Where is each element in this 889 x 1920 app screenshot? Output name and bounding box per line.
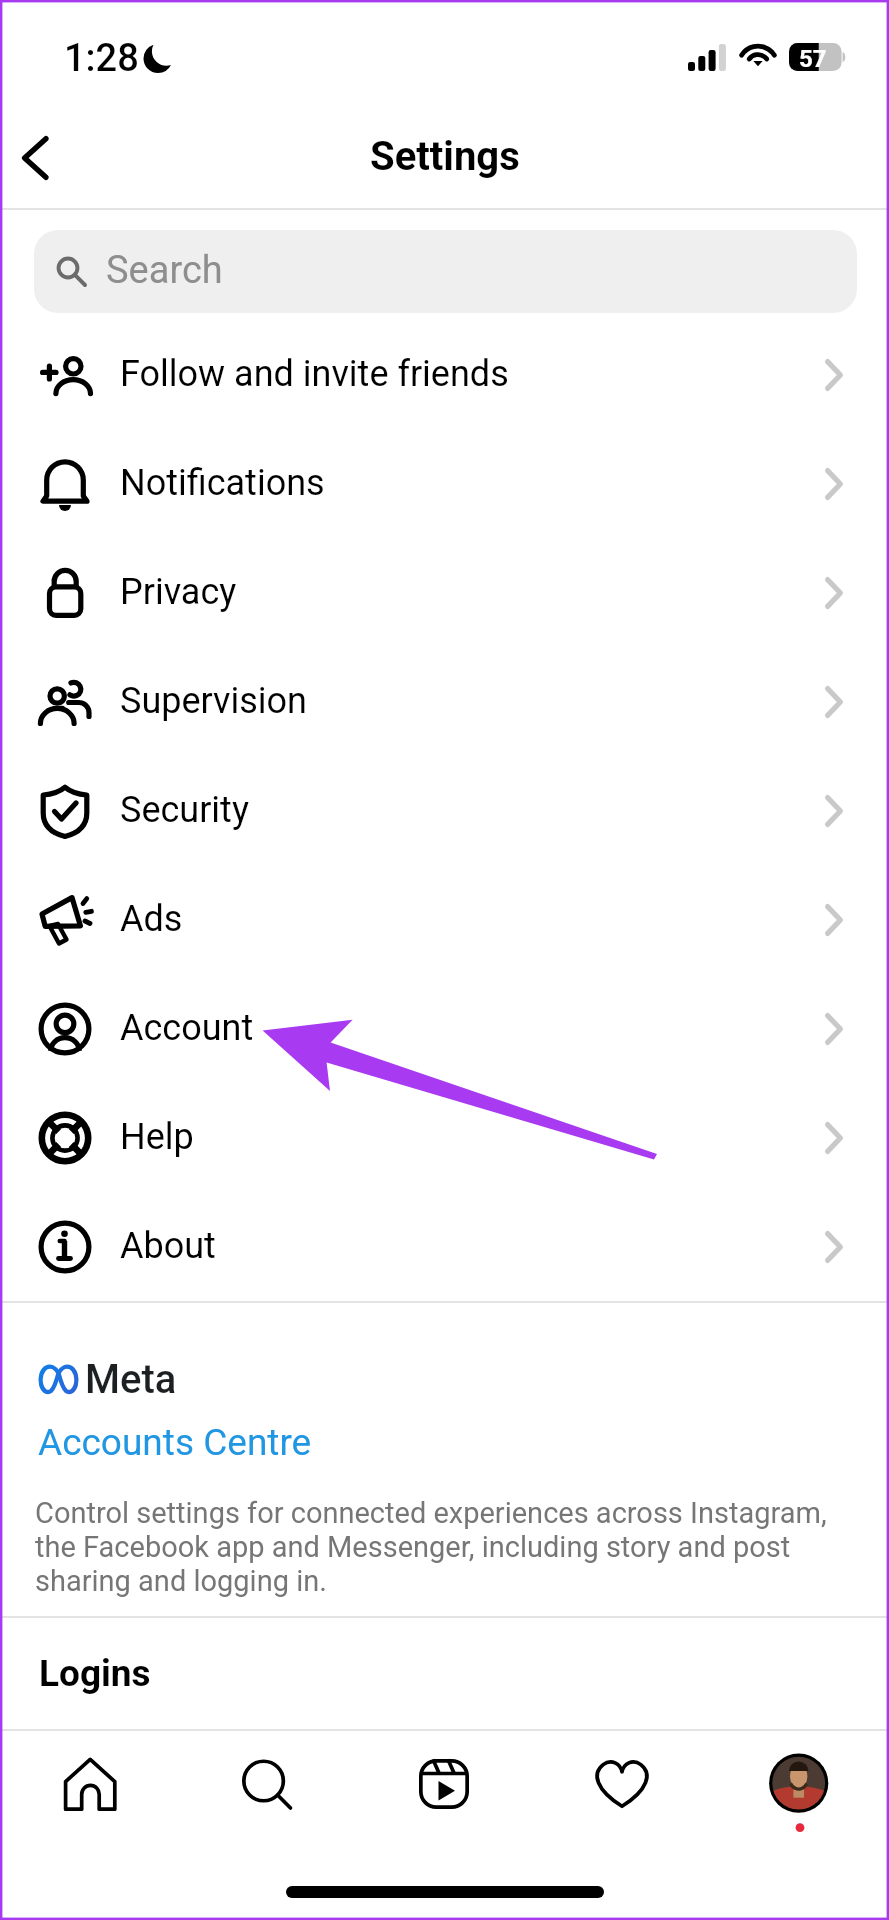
button[interactable]: Search (177, 1729, 355, 1839)
staticText: Security (120, 789, 249, 831)
button[interactable]: Back (0, 107, 88, 208)
staticText: About (120, 1225, 216, 1267)
staticText: Privacy (120, 571, 237, 613)
button[interactable]: Supervision (0, 647, 889, 756)
button[interactable]: Privacy (0, 538, 889, 647)
staticText: Settings (370, 133, 520, 180)
button[interactable]: Ads (0, 865, 889, 974)
button[interactable]: Reels (355, 1729, 533, 1839)
staticText: Supervision (120, 680, 307, 722)
staticText: 57 (799, 45, 827, 73)
button[interactable]: Security (0, 756, 889, 865)
staticText: 1:28 (64, 36, 139, 81)
staticText: Follow and invite friends (120, 353, 509, 395)
staticText: Accounts Centre (38, 1421, 312, 1464)
button[interactable]: Help (0, 1083, 889, 1192)
button[interactable]: Follow and invite friends (0, 320, 889, 429)
staticText: Help (120, 1116, 194, 1158)
button[interactable]: Activity (533, 1729, 711, 1839)
staticText: Search (106, 248, 223, 293)
button[interactable]: Notifications (0, 429, 889, 538)
staticText: Account (120, 1007, 254, 1049)
button[interactable]: Account (0, 974, 889, 1083)
staticText: Control settings for connected experienc… (35, 1496, 850, 1598)
staticText: Ads (120, 898, 183, 940)
button[interactable]: Home (0, 1729, 177, 1839)
button[interactable]: Profile (711, 1729, 889, 1839)
staticText: Notifications (120, 462, 325, 504)
button[interactable]: Search (34, 230, 857, 313)
button[interactable]: Accounts Centre (38, 1421, 312, 1464)
staticText: Logins (39, 1652, 151, 1695)
staticText: Meta (85, 1356, 177, 1403)
button[interactable]: About (0, 1192, 889, 1301)
